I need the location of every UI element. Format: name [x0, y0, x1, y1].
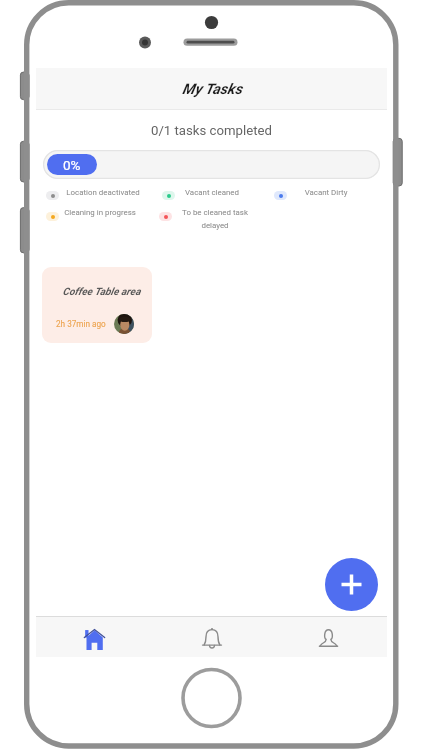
- button[interactable]: My Tasks: [36, 68, 387, 109]
- button[interactable]: [43, 150, 380, 179]
- staticText: My Tasks: [182, 80, 242, 97]
- staticText: Cleaning in progress: [55, 208, 145, 217]
- staticText: Vacant cleaned: [167, 188, 257, 197]
- button[interactable]: Notifications: [153, 617, 270, 657]
- staticText: Coffee Table area: [58, 286, 145, 298]
- staticText: 2h 37min ago: [56, 319, 106, 329]
- staticText: 0%: [63, 157, 81, 173]
- button[interactable]: Coffee Table area: [42, 267, 152, 343]
- button[interactable]: Add task: [325, 558, 378, 611]
- staticText: Vacant Dirty: [281, 188, 371, 197]
- staticText: To be cleaned task delayed: [181, 208, 249, 230]
- staticText: 0/1 tasks completed: [151, 123, 272, 138]
- button[interactable]: Profile: [270, 617, 387, 657]
- button[interactable]: Home: [36, 617, 153, 657]
- staticText: Location deactivated: [58, 188, 148, 197]
